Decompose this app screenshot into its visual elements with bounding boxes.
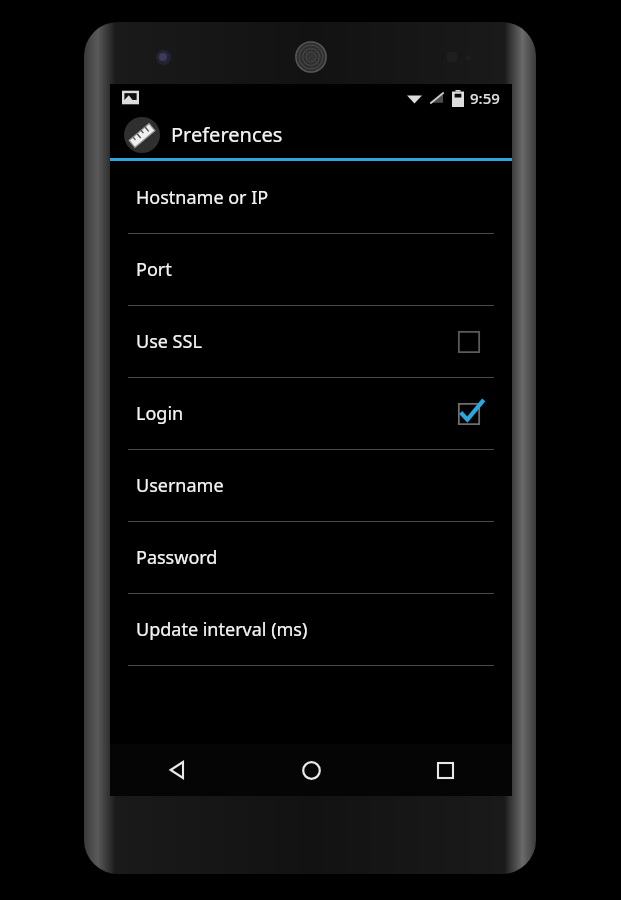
button[interactable]: Unchecked [454,327,484,357]
staticText: Login [136,401,454,426]
button[interactable]: Back [110,744,244,796]
staticText: Port [136,257,484,282]
button[interactable]: Checked [454,399,484,429]
button[interactable]: Login [110,378,512,449]
staticText: Use SSL [136,329,454,354]
staticText: Update interval (ms) [136,617,484,642]
staticText: Hostname or IP [136,185,484,210]
staticText: 9:59 [470,88,500,108]
staticText: Preferences [171,121,283,148]
button[interactable]: Recent apps [378,744,512,796]
button[interactable]: Update interval (ms) [110,594,512,665]
button[interactable]: Password [110,522,512,593]
button[interactable]: Preferences [110,111,512,158]
button[interactable]: Use SSL [110,306,512,377]
staticText: Username [136,473,484,498]
button[interactable]: Hostname or IP [110,162,512,233]
button[interactable]: Home [244,744,378,796]
button[interactable]: Username [110,450,512,521]
staticText: Password [136,545,484,570]
button[interactable]: Port [110,234,512,305]
